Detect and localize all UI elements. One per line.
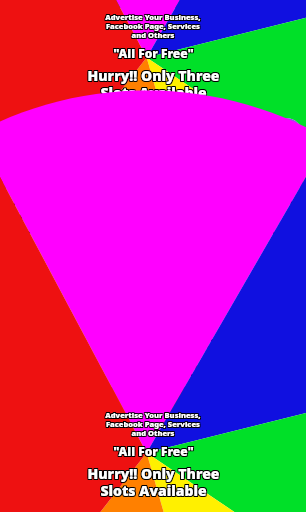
staticText: Advertise Your Business, Facebook Page, …	[104, 411, 200, 440]
button[interactable]: FORGOT PASSWORD	[157, 339, 294, 376]
staticText: "All For Free"	[113, 44, 194, 60]
staticText: Advertise Your Business, Facebook Page, …	[104, 12, 200, 41]
staticText: Hurry!! Only Three Slots Available	[87, 465, 220, 497]
staticText: "All For Free"	[114, 44, 195, 60]
staticText: Hurry!! Only Three Slots Available	[86, 67, 219, 103]
staticText: Hurry!! Only Three Slots Available	[86, 465, 219, 497]
staticText: "All For Free"	[113, 45, 194, 61]
staticText: Advertise Your Business, Facebook Page, …	[104, 13, 200, 42]
staticText: Hurry!! Only Three Slots Available	[88, 65, 221, 101]
staticText: Hurry!! Only Three Slots Available	[87, 464, 220, 496]
staticText: "All For Free"	[112, 44, 193, 60]
staticText: Hurry!! Only Three Slots Available	[87, 65, 220, 101]
staticText: Hurry!! Only Three Slots Available	[88, 463, 221, 495]
staticText: Hurry!! Only Three Slots Available	[87, 463, 220, 495]
staticText: "All For Free"	[112, 442, 193, 458]
staticText: "All For Free"	[114, 443, 195, 459]
staticText: FORGOT PASSWORD	[168, 340, 283, 376]
staticText: "All For Free"	[114, 45, 195, 61]
staticText: Advertise Your Business, Facebook Page, …	[106, 12, 202, 41]
staticText: "All For Free"	[112, 443, 193, 459]
staticText: Advertise Your Business, Facebook Page, …	[105, 13, 201, 42]
button[interactable]: LOGIN	[12, 339, 88, 376]
staticText: Hurry!! Only Three Slots Available	[88, 465, 221, 497]
staticText: "All For Free"	[112, 45, 193, 61]
staticText: Hurry!! Only Three Slots Available	[86, 65, 219, 101]
staticText: Advertise Your Business, Facebook Page, …	[106, 13, 202, 42]
staticText: Advertise Your Business, Facebook Page, …	[105, 11, 201, 40]
staticText: Advertise Your Business, Facebook Page, …	[106, 11, 202, 40]
staticText: Hurry!! Only Three Slots Available	[86, 464, 219, 496]
staticText: Advertise Your Business, Facebook Page, …	[105, 409, 201, 438]
staticText: Advertise Your Business, Facebook Page, …	[106, 410, 202, 439]
staticText: Advertise Your Business, Facebook Page, …	[105, 411, 201, 440]
staticText: Advertise Your Business, Facebook Page, …	[104, 409, 200, 438]
staticText: "All For Free"	[113, 443, 194, 459]
staticText: Hurry!! Only Three Slots Available	[87, 67, 220, 103]
staticText: Advertise Your Business, Facebook Page, …	[104, 410, 200, 439]
staticText: "All For Free"	[113, 46, 194, 62]
staticText: "All For Free"	[112, 444, 193, 460]
staticText: "All For Free"	[113, 444, 194, 460]
staticText: "All For Free"	[114, 442, 195, 458]
staticText: Advertise Your Business, Facebook Page, …	[104, 11, 200, 40]
staticText: Advertise Your Business, Facebook Page, …	[106, 411, 202, 440]
staticText: "All For Free"	[112, 46, 193, 62]
staticText: Hurry!! Only Three Slots Available	[87, 66, 220, 102]
staticText: Hurry!! Only Three Slots Available	[88, 67, 221, 103]
staticText: Hurry!! Only Three Slots Available	[86, 463, 219, 495]
button[interactable]: Password	[12, 189, 294, 234]
staticText: "All For Free"	[114, 444, 195, 460]
staticText: Hurry!! Only Three Slots Available	[86, 66, 219, 102]
other: Password	[20, 198, 47, 225]
staticText: "All For Free"	[113, 442, 194, 458]
staticText: "All For Free"	[114, 46, 195, 62]
staticText: Advertise Your Business, Facebook Page, …	[105, 410, 201, 439]
staticText: Advertise Your Business, Facebook Page, …	[105, 12, 201, 41]
staticText: Advertise Your Business, Facebook Page, …	[106, 409, 202, 438]
staticText: Hurry!! Only Three Slots Available	[88, 66, 221, 102]
staticText: Hurry!! Only Three Slots Available	[88, 464, 221, 496]
